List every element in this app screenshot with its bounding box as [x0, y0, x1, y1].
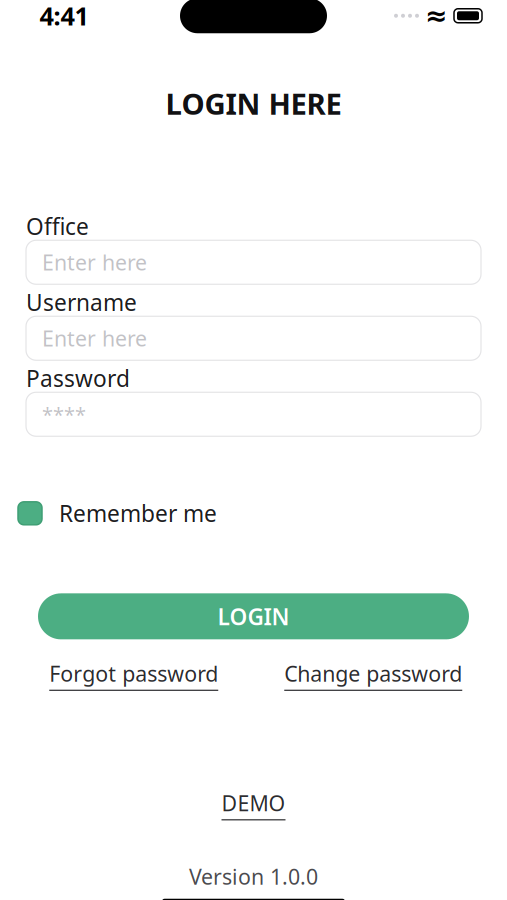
button[interactable]: Remember me — [18, 492, 217, 534]
staticText: Remember me — [59, 498, 217, 528]
staticText: ≈ — [425, 1, 447, 31]
staticText: LOGIN — [217, 601, 289, 631]
staticText: **** — [42, 401, 86, 428]
staticText: Password — [26, 363, 130, 393]
staticText: LOGIN HERE — [165, 84, 341, 123]
staticText: Username — [26, 287, 137, 317]
staticText: Office — [26, 211, 89, 241]
button[interactable]: DEMO — [221, 789, 285, 820]
staticText: Enter here — [42, 248, 147, 276]
button[interactable]: Forgot password — [49, 659, 218, 691]
button[interactable]: LOGIN — [38, 593, 469, 639]
staticText: Version 1.0.0 — [189, 862, 318, 891]
staticText: DEMO — [221, 789, 285, 817]
staticText: Change password — [284, 659, 462, 688]
staticText: 4:41 — [39, 0, 88, 32]
staticText: Forgot password — [49, 659, 218, 688]
button[interactable]: Change password — [284, 659, 462, 691]
staticText: Enter here — [42, 324, 147, 352]
